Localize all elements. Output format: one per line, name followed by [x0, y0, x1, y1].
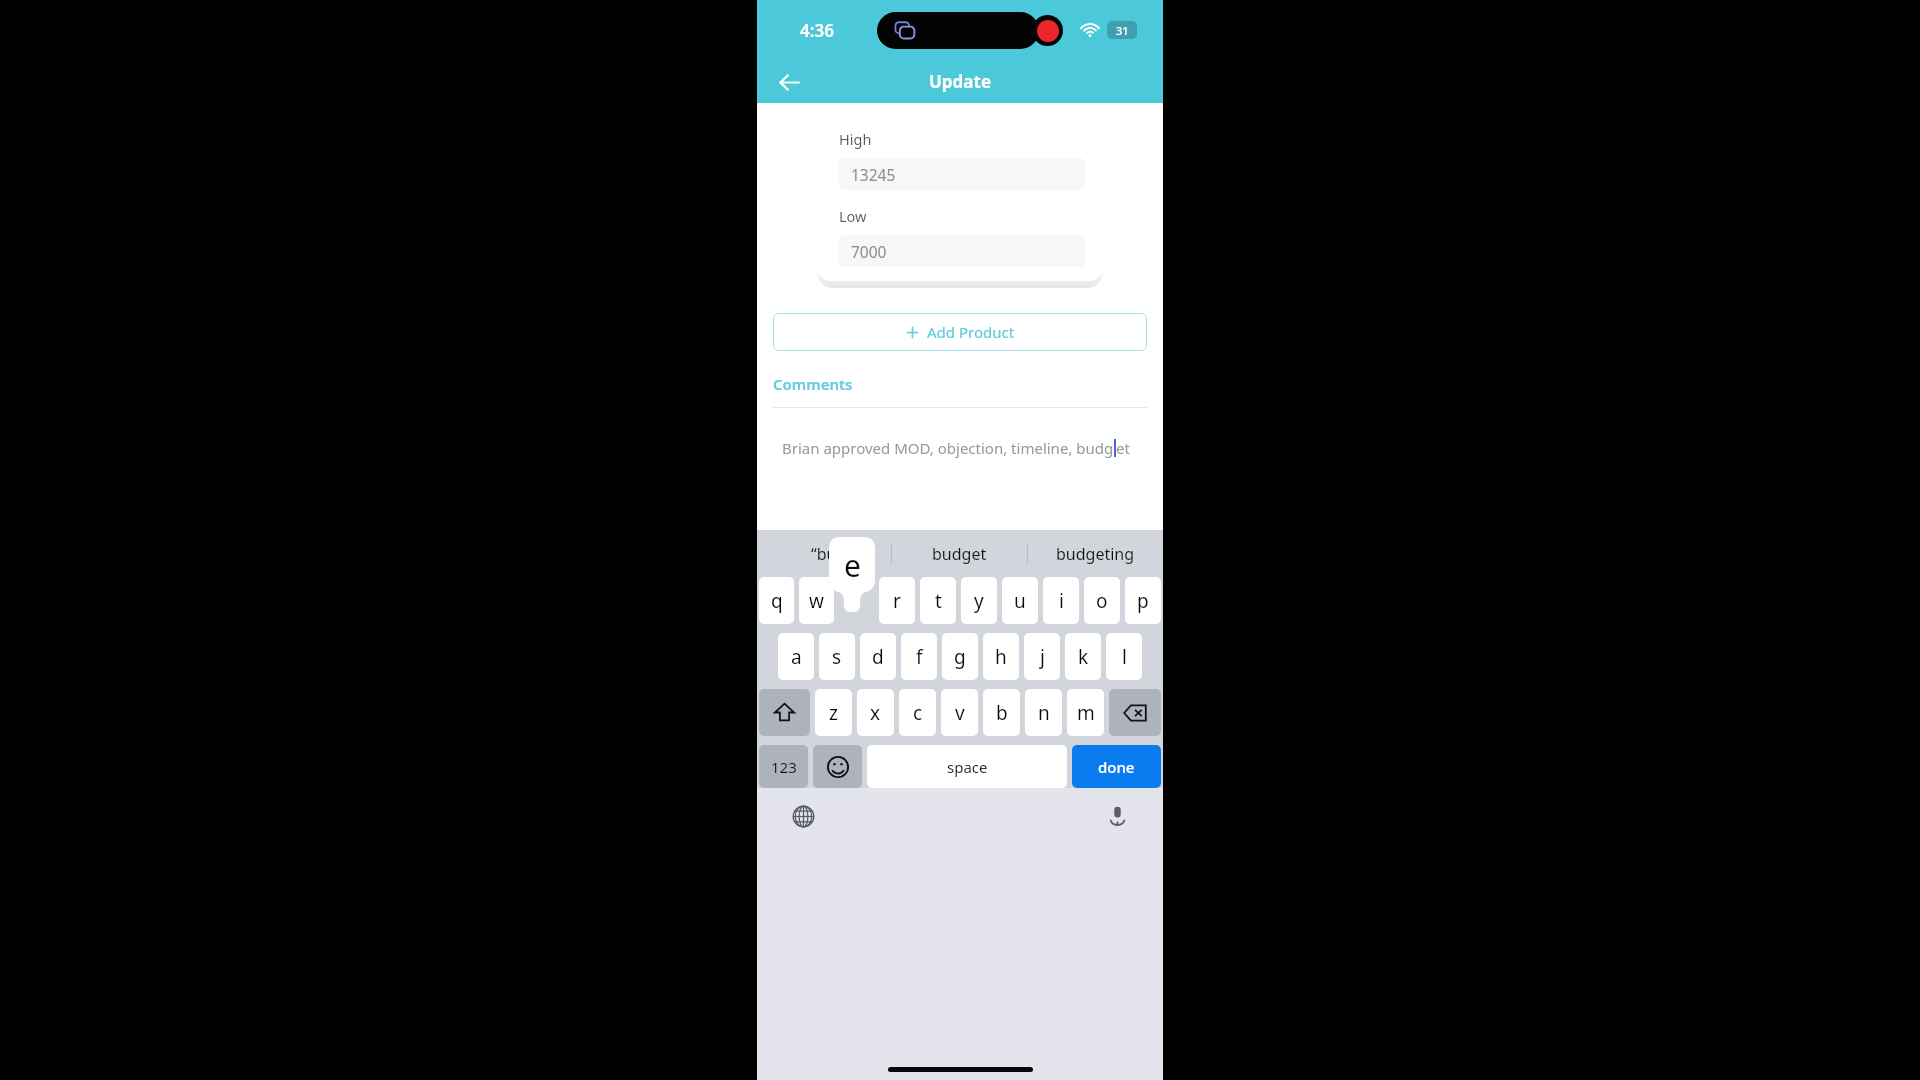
staticText: k [1078, 644, 1089, 670]
button[interactable]: Emoji [813, 745, 862, 788]
staticText: 123 [771, 757, 797, 777]
button[interactable]: m [1067, 689, 1104, 736]
button[interactable]: n [1025, 689, 1062, 736]
button[interactable]: Voice input [1099, 798, 1135, 834]
staticText: a [791, 644, 802, 670]
staticText: n [1038, 700, 1050, 726]
staticText: d [872, 644, 884, 670]
button[interactable]: g [942, 633, 978, 680]
staticText: r [893, 588, 901, 614]
staticText: y [974, 588, 984, 614]
button[interactable]: c [899, 689, 936, 736]
button[interactable]: Shift [759, 689, 810, 736]
button[interactable]: o [1084, 577, 1120, 624]
staticText: High [839, 129, 872, 149]
staticText: x [870, 700, 881, 726]
staticText: t [935, 588, 942, 614]
button[interactable]: t [920, 577, 956, 624]
staticText: 13245 [851, 164, 896, 185]
button[interactable]: budget [892, 530, 1027, 577]
button[interactable]: 7000 [839, 235, 1085, 267]
staticText: budgeting [1056, 543, 1135, 565]
button[interactable]: x [857, 689, 894, 736]
staticText: “bu [811, 543, 837, 565]
button[interactable]: i [1043, 577, 1079, 624]
button[interactable]: k [1065, 633, 1101, 680]
button[interactable]: y [961, 577, 997, 624]
staticText: l [1122, 644, 1127, 670]
button[interactable]: Add Product [773, 313, 1147, 351]
staticText: 4:36 [800, 19, 834, 42]
staticText: et [1116, 438, 1130, 458]
button[interactable]: a [778, 633, 814, 680]
button[interactable]: v [941, 689, 978, 736]
button[interactable]: “bu [757, 530, 891, 577]
button[interactable]: Back [769, 62, 809, 102]
button[interactable]: w [799, 577, 834, 624]
staticText: budget [932, 543, 987, 565]
staticText: 31 [1116, 23, 1129, 38]
staticText: Brian approved MOD, objection, timeline,… [782, 438, 1114, 458]
staticText: done [1098, 757, 1135, 777]
button[interactable] [839, 577, 874, 624]
staticText: c [913, 700, 923, 726]
staticText: w [809, 588, 824, 614]
button[interactable]: h [983, 633, 1019, 680]
button[interactable]: 13245 [839, 158, 1085, 190]
staticText: Add Product [927, 322, 1015, 342]
button[interactable]: u [1002, 577, 1038, 624]
staticText: j [1040, 644, 1045, 670]
staticText: h [995, 644, 1007, 670]
button[interactable]: z [815, 689, 852, 736]
staticText: i [1059, 588, 1064, 614]
button[interactable]: l [1106, 633, 1142, 680]
button[interactable]: b [983, 689, 1020, 736]
button[interactable]: done [1072, 745, 1161, 788]
staticText: s [832, 644, 842, 670]
button[interactable]: d [860, 633, 896, 680]
staticText: 7000 [851, 241, 887, 262]
staticText: g [954, 644, 966, 670]
staticText: m [1077, 700, 1095, 726]
button[interactable]: p [1125, 577, 1161, 624]
button[interactable]: r [879, 577, 915, 624]
staticText: u [1014, 588, 1026, 614]
staticText: o [1096, 588, 1108, 614]
staticText: f [916, 644, 923, 670]
staticText: e [844, 545, 861, 586]
staticText: q [771, 588, 783, 614]
button[interactable]: s [819, 633, 855, 680]
staticText: z [829, 700, 838, 726]
button[interactable]: Backspace [1109, 689, 1161, 736]
staticText: Comments [773, 374, 853, 394]
button[interactable]: f [901, 633, 937, 680]
button[interactable]: budgeting [1028, 530, 1163, 577]
button[interactable]: 123 [759, 745, 808, 788]
button[interactable]: Change keyboard language [785, 798, 821, 834]
button[interactable]: space [867, 745, 1067, 788]
button[interactable]: j [1024, 633, 1060, 680]
staticText: space [947, 757, 988, 777]
staticText: b [996, 700, 1008, 726]
staticText: p [1137, 588, 1149, 614]
button[interactable]: q [759, 577, 794, 624]
staticText: v [955, 700, 965, 726]
staticText: Low [839, 206, 867, 226]
staticText: Update [929, 70, 992, 93]
